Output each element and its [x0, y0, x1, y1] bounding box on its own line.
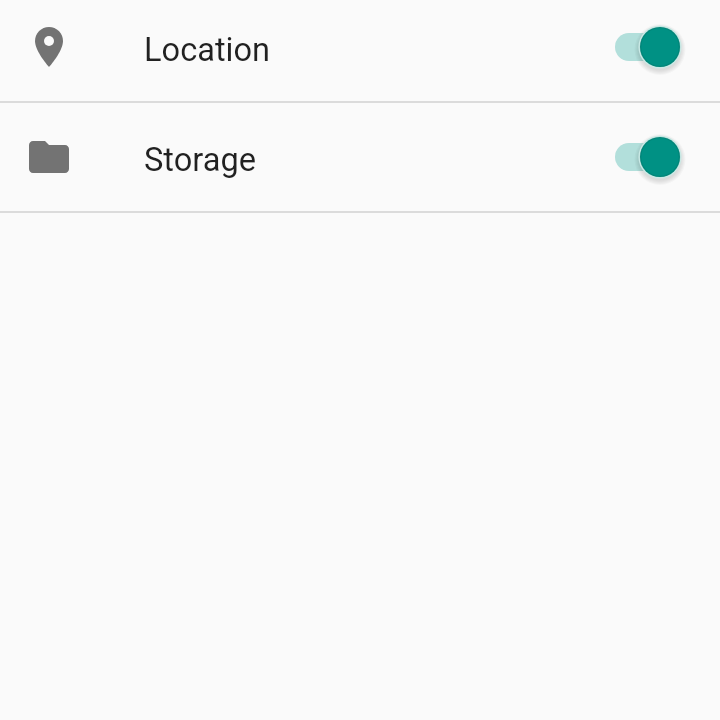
button[interactable]: Location switch, on	[615, 23, 681, 71]
staticText: Storage	[144, 141, 257, 179]
button[interactable]: Storage switch, on	[615, 133, 681, 181]
button[interactable]: Location	[0, 0, 720, 101]
staticText: Location	[144, 31, 271, 69]
button[interactable]: Storage	[0, 103, 720, 211]
